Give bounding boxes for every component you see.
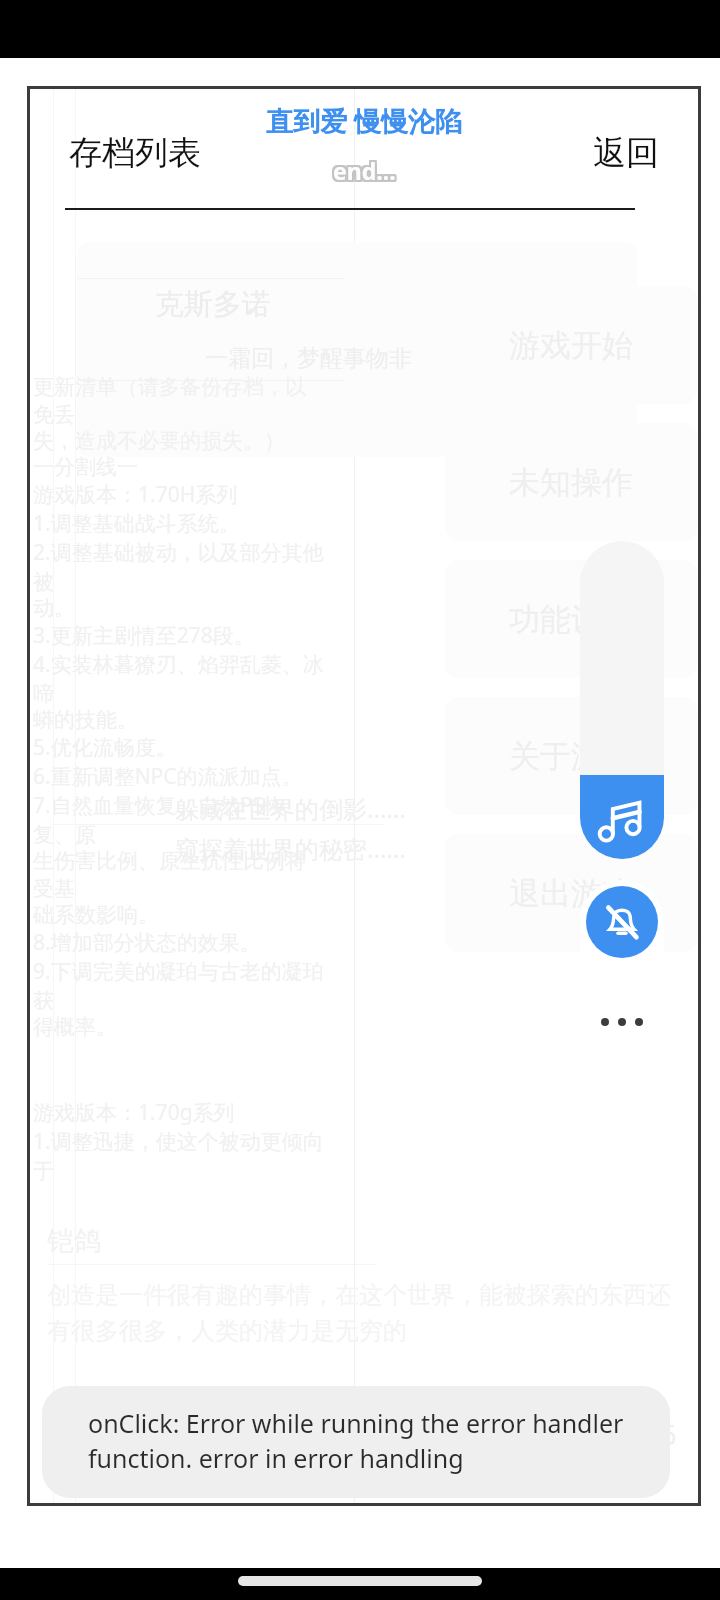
staticText: end... — [335, 153, 398, 184]
button[interactable]: Mute notifications — [586, 886, 658, 958]
staticText: 窥探着世界的秘密...... — [175, 832, 406, 865]
staticText: 础系数影响。 — [33, 902, 159, 928]
staticText: onClick: Error while running the error h… — [88, 1406, 624, 1476]
staticText: 一分割线一 — [33, 454, 138, 480]
staticText: 存档列表 — [69, 132, 201, 174]
button[interactable]: More options — [601, 1018, 643, 1026]
staticText: 蟒的技能。 — [33, 707, 138, 733]
staticText: 得概率。 — [33, 1014, 117, 1040]
button[interactable]: 关于游戏 — [445, 697, 697, 815]
staticText: 8.增加部分状态的效果。 — [33, 928, 261, 957]
staticText: 躲藏在世界的倒影...... — [175, 792, 406, 825]
staticText: 创造是一件很有趣的事情，在这个世界，能被探索的东西还有很多很多，人类的潜力是无穷… — [47, 1280, 677, 1346]
staticText: end... — [335, 155, 398, 186]
staticText: 游戏版本：1.70H系列 — [33, 480, 238, 509]
button[interactable]: 存档列表 — [65, 128, 205, 178]
staticText: 铠鸽 — [47, 1224, 101, 1258]
staticText: 返回 — [593, 132, 659, 174]
staticText: 2.调整基础被动，以及部分其他被 — [33, 538, 325, 595]
staticText: 直到爱 慢慢沦陷 — [268, 104, 465, 141]
staticText: 游戏开始 — [509, 326, 633, 365]
staticText: 7.自然血量恢复、自然PS恢复、原 — [33, 791, 325, 848]
staticText: 更新清单（请多备份存档，以免丢 — [33, 374, 325, 428]
staticText: 直到爱 慢慢沦陷 — [268, 102, 465, 139]
staticText: 直到爱 慢慢沦陷 — [266, 100, 463, 137]
staticText: 1.调整基础战斗系统。 — [33, 509, 240, 538]
staticText: 游戏版本 — [51, 1416, 159, 1450]
staticText: 直到爱 慢慢沦陷 — [266, 102, 463, 139]
staticText: 一霜回，梦醒事物非 — [205, 344, 412, 373]
staticText: 5.优化流畅度。 — [33, 733, 177, 762]
staticText: 未知操作 — [509, 463, 633, 502]
button[interactable]: 功能设置 — [445, 560, 697, 678]
staticText: 关于游戏 — [509, 737, 633, 776]
staticText: 功能设置 — [509, 600, 633, 639]
button[interactable]: Music — [580, 541, 664, 859]
staticText: 3.更新主剧情至278段。 — [33, 621, 255, 650]
staticText: end... — [331, 157, 394, 188]
staticText: end... — [333, 155, 396, 186]
staticText: end... — [335, 157, 398, 188]
staticText: 直到爱 慢慢沦陷 — [264, 102, 461, 139]
staticText: 动。 — [33, 595, 75, 621]
staticText: 6.重新调整NPC的流派加点。 — [33, 762, 303, 791]
staticText: end... — [333, 157, 396, 188]
staticText: 4.实装林暮獠刃、焰羿乱菱、冰啼 — [33, 650, 325, 707]
staticText: 9.下调完美的凝珀与古老的凝珀获 — [33, 957, 325, 1014]
staticText: 直到爱 慢慢沦陷 — [264, 100, 461, 137]
staticText: 1.调整迅捷，使这个被动更倾向于 — [33, 1127, 325, 1184]
staticText: 直到爱 慢慢沦陷 — [264, 104, 461, 141]
staticText: end... — [333, 153, 396, 184]
staticText: end... — [331, 155, 394, 186]
button[interactable]: 返回 — [589, 128, 663, 178]
staticText: 失，造成不必要的损失。） — [33, 428, 285, 454]
staticText: 直到爱 慢慢沦陷 — [268, 100, 465, 137]
staticText: end... — [331, 153, 394, 184]
button[interactable]: 退出游戏 — [445, 834, 697, 952]
staticText: 生伤害比例、原生抗性比例将受基 — [33, 848, 325, 902]
staticText: 克斯多诺 — [155, 286, 271, 323]
staticText: 游戏版本：1.70g系列 — [33, 1098, 235, 1127]
staticText: 直到爱 慢慢沦陷 — [266, 104, 463, 141]
staticText: 退出游戏 — [509, 874, 633, 913]
staticText: 1.70H_06 — [560, 1416, 677, 1453]
